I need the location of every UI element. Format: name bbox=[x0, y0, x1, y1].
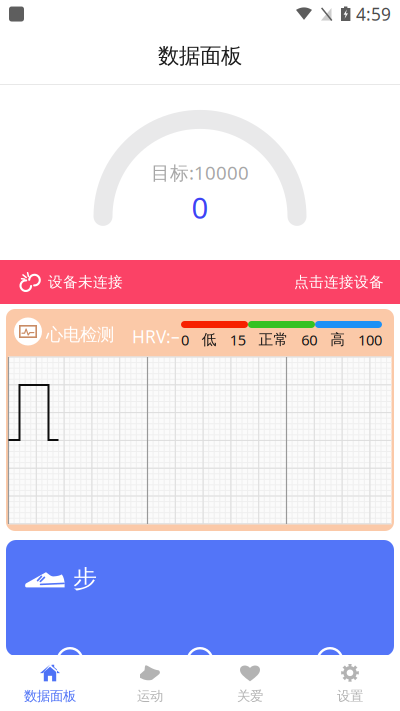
staticText: 运动 bbox=[137, 688, 163, 704]
staticText: 15 bbox=[230, 330, 246, 349]
button[interactable]: 关爱 bbox=[200, 655, 300, 711]
staticText: HRV:– bbox=[132, 325, 180, 348]
button[interactable]: 运动 bbox=[100, 655, 200, 711]
button[interactable]: 设备未连接 bbox=[0, 260, 400, 304]
staticText: 高 bbox=[330, 331, 345, 349]
staticText: 正常 bbox=[258, 331, 288, 349]
staticText: 数据面板 bbox=[158, 43, 242, 69]
staticText: 0 bbox=[191, 188, 208, 227]
button[interactable]: 数据面板 bbox=[0, 655, 100, 711]
staticText: 0 bbox=[181, 330, 189, 349]
staticText: 数据面板 bbox=[24, 688, 76, 704]
staticText: 设备未连接 bbox=[48, 273, 123, 291]
staticText: 点击连接设备 bbox=[294, 273, 384, 291]
staticText: 设置 bbox=[337, 688, 363, 704]
staticText: 目标:10000 bbox=[151, 160, 249, 185]
staticText: 60 bbox=[301, 330, 317, 349]
staticText: 4:59 bbox=[356, 2, 391, 25]
button[interactable]: 设置 bbox=[300, 655, 400, 711]
staticText: 步 bbox=[73, 564, 97, 593]
staticText: 心电检测 bbox=[46, 324, 114, 345]
staticText: 关爱 bbox=[237, 688, 263, 704]
staticText: 低 bbox=[202, 331, 217, 349]
staticText: 100 bbox=[358, 330, 382, 349]
